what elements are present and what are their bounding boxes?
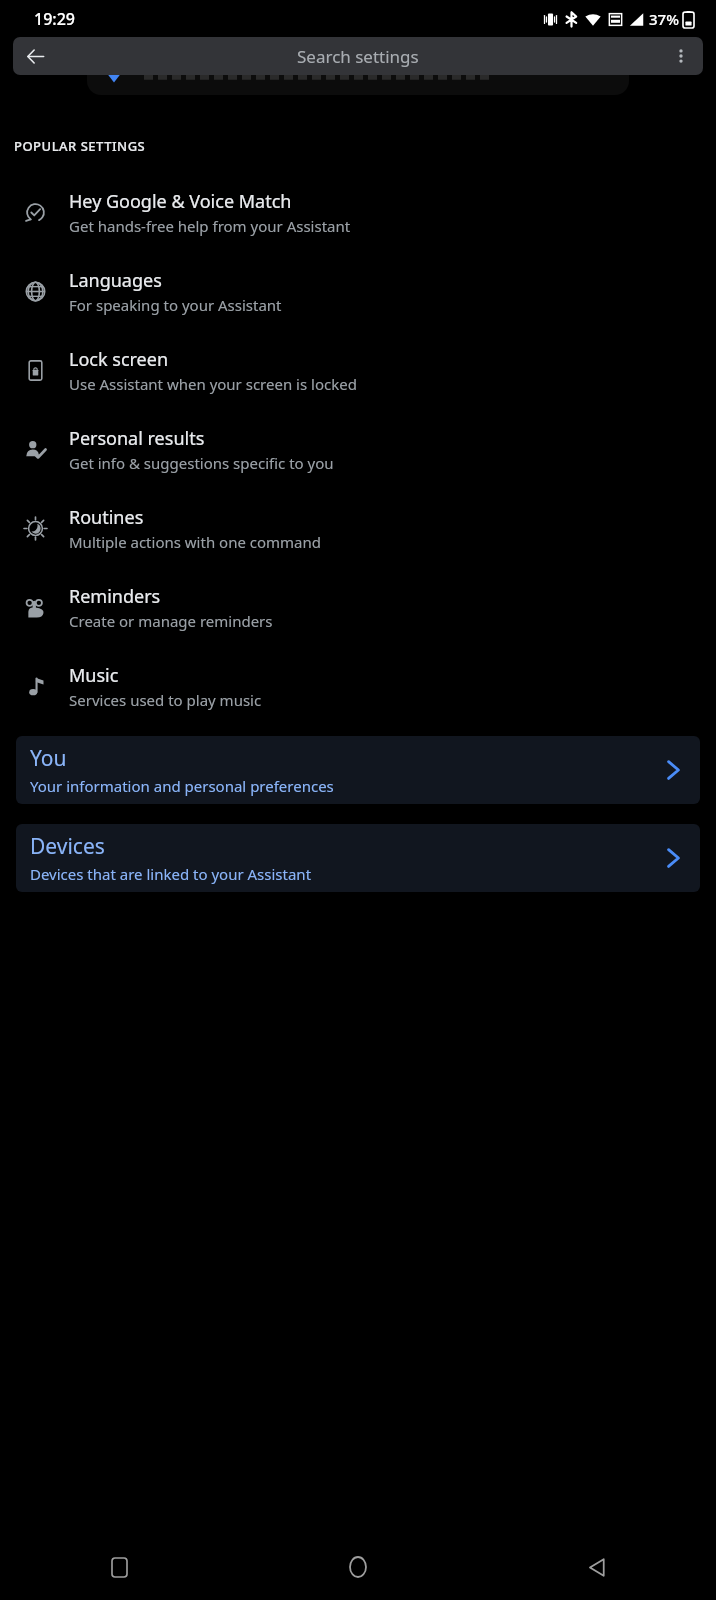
staticText: Devices	[30, 832, 105, 861]
button[interactable]: More options	[667, 42, 695, 70]
button[interactable]: Back	[477, 1534, 716, 1600]
staticText: Use Assistant when your screen is locked	[69, 374, 357, 394]
button[interactable]: Languages	[0, 264, 716, 319]
staticText: Get hands-free help from your Assistant	[69, 216, 351, 236]
staticText: Get info & suggestions specific to you	[69, 453, 334, 473]
staticText: Music	[69, 663, 119, 688]
button[interactable]	[87, 75, 629, 95]
staticText: Routines	[69, 505, 144, 530]
staticText: Languages	[69, 268, 162, 293]
staticText: Devices that are linked to your Assistan…	[30, 864, 312, 884]
staticText: You	[30, 744, 67, 773]
button[interactable]: Home	[238, 1534, 477, 1600]
staticText: 37%	[649, 9, 679, 29]
staticText: POPULAR SETTINGS	[14, 137, 146, 155]
staticText: Create or manage reminders	[69, 611, 273, 631]
staticText: Multiple actions with one command	[69, 532, 322, 552]
button[interactable]: You	[16, 736, 700, 804]
staticText: Search settings	[297, 45, 419, 68]
button[interactable]: Hey Google & Voice Match	[0, 185, 716, 240]
staticText: For speaking to your Assistant	[69, 295, 282, 315]
staticText: 19:29	[34, 8, 75, 30]
button[interactable]: Routines	[0, 501, 716, 556]
staticText: Services used to play music	[69, 690, 262, 710]
button[interactable]: Reminders	[0, 580, 716, 635]
button[interactable]: Recents	[0, 1534, 238, 1600]
button[interactable]: Music	[0, 659, 716, 714]
staticText: Hey Google & Voice Match	[69, 189, 292, 214]
button[interactable]: Back	[13, 37, 703, 75]
staticText: Reminders	[69, 584, 161, 609]
button[interactable]: Personal results	[0, 422, 716, 477]
button[interactable]: Devices	[16, 824, 700, 892]
staticText: Lock screen	[69, 347, 169, 372]
button[interactable]: Back	[21, 42, 49, 70]
staticText: Your information and personal preference…	[30, 776, 334, 796]
button[interactable]: Lock screen	[0, 343, 716, 398]
staticText: Personal results	[69, 426, 205, 451]
